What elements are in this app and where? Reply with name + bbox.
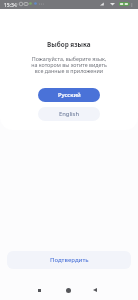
button[interactable]: Home: [59, 281, 77, 299]
staticText: English: [59, 110, 80, 118]
staticText: 15:34: [4, 2, 17, 9]
staticText: Выбор языка: [47, 40, 91, 49]
button[interactable]: Подтвердить: [7, 251, 131, 269]
button[interactable]: English: [38, 107, 100, 121]
staticText: Русский: [58, 91, 81, 99]
button[interactable]: Back: [86, 281, 104, 299]
button[interactable]: Recents: [30, 281, 48, 299]
button[interactable]: Русский: [38, 88, 100, 102]
staticText: Пожалуйста, выберите язык, на котором вы…: [31, 55, 107, 74]
staticText: Подтвердить: [50, 256, 89, 264]
